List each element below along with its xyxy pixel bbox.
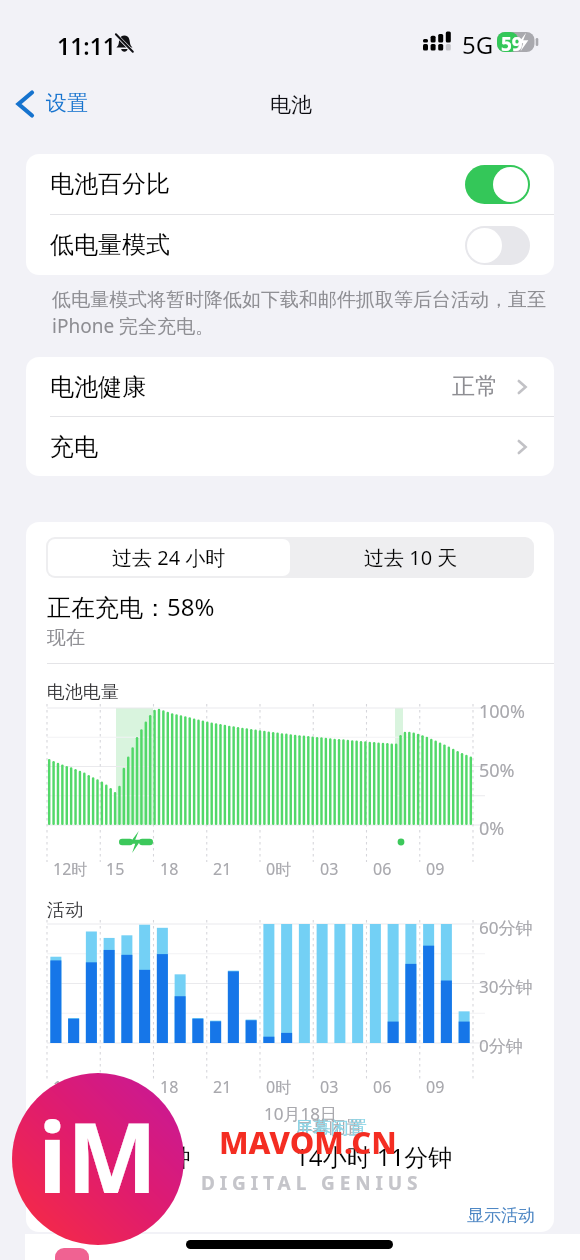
staticText: 15	[106, 858, 125, 880]
staticText: 10月18日	[264, 1102, 337, 1125]
staticText: 低电量模式	[50, 230, 170, 260]
button[interactable]: 电池百分比	[26, 154, 554, 214]
button[interactable]: 设置	[10, 86, 98, 122]
staticText: 100%	[479, 699, 525, 724]
staticText: 59	[501, 31, 523, 51]
staticText: 12时	[53, 1076, 88, 1098]
staticText: 0时	[266, 858, 292, 880]
staticText: 活动	[47, 899, 83, 922]
staticText: 5G	[462, 28, 494, 61]
staticText: 60分钟	[479, 916, 533, 939]
staticText: 正常	[452, 372, 498, 401]
staticText: 电池电量	[47, 681, 119, 704]
button[interactable]: 过去 10 天	[290, 539, 532, 576]
staticText: 21	[213, 1076, 232, 1098]
staticText: 电池健康	[50, 372, 146, 402]
staticText: 21	[213, 858, 232, 880]
staticText: 显示活动	[467, 1205, 535, 1226]
staticText: 充电	[50, 432, 98, 462]
staticText: 18	[160, 1076, 179, 1098]
staticText: 14小时 11分钟	[295, 1140, 453, 1173]
staticText: 0%	[479, 816, 505, 841]
staticText: 过去 10 天	[364, 544, 458, 571]
staticText: 屏幕闲置	[295, 1117, 367, 1140]
staticText: 低电量模式将暂时降低如下载和邮件抓取等后台活动，直至 iPhone 完全充电。	[52, 288, 546, 339]
staticText: 30分钟	[479, 975, 533, 998]
staticText: 03	[320, 1076, 339, 1098]
staticText: 09	[426, 858, 445, 880]
staticText: 设置	[46, 90, 88, 116]
staticText: iM	[38, 1090, 158, 1221]
button[interactable]: 低电量模式	[26, 215, 554, 275]
staticText: 1小时 13分钟	[47, 1140, 191, 1173]
staticText: 过去 24 小时	[112, 544, 226, 571]
staticText: DIGITAL GENIUS	[201, 1170, 423, 1196]
staticText: MAVOM.CN	[219, 1121, 397, 1163]
staticText: 03	[320, 858, 339, 880]
button[interactable]: 显示活动	[457, 1199, 554, 1232]
staticText: 0时	[266, 1076, 292, 1098]
staticText: 06	[373, 858, 392, 880]
button[interactable]: 电池健康	[26, 357, 554, 416]
staticText: 现在	[47, 626, 85, 650]
staticText: 09	[426, 1076, 445, 1098]
staticText: 正在充电：58%	[47, 590, 215, 623]
staticText: 50%	[479, 758, 515, 783]
staticText: 电池百分比	[50, 169, 170, 199]
staticText: 屏幕闲置	[295, 1117, 363, 1138]
staticText: 11:11	[57, 30, 116, 61]
staticText: 0分钟	[479, 1034, 523, 1057]
staticText: 15	[106, 1076, 125, 1098]
staticText: 06	[373, 1076, 392, 1098]
button[interactable]: 充电	[26, 417, 554, 476]
staticText: 12时	[53, 858, 88, 880]
staticText: 电池	[270, 92, 312, 118]
staticText: 屏幕使用	[47, 1117, 115, 1138]
staticText: 18	[160, 858, 179, 880]
button[interactable]: 过去 24 小时	[48, 539, 290, 576]
